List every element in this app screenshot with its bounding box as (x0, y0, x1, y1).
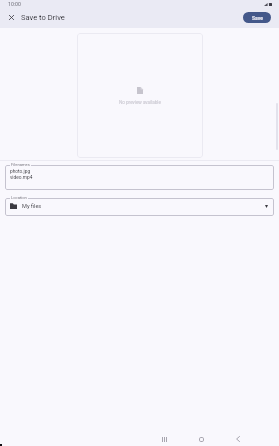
button[interactable]: Home (188, 430, 214, 446)
staticText: Save to Drive (21, 13, 65, 22)
staticText: 10:00 (8, 1, 21, 7)
staticText: No preview available (119, 100, 161, 105)
button[interactable]: Close (5, 11, 18, 24)
staticText: Save (252, 15, 263, 21)
staticText: Location (11, 195, 27, 200)
button[interactable]: Recent apps (151, 430, 177, 446)
button[interactable]: Save (243, 12, 271, 23)
staticText: My files (22, 203, 42, 210)
button[interactable]: photo.jpg (5, 165, 274, 190)
button[interactable]: My files (5, 198, 274, 216)
staticText: Filenames (11, 162, 30, 167)
staticText: video.mp4 (10, 175, 33, 181)
staticText: photo.jpg (10, 169, 31, 175)
button[interactable]: Back (225, 430, 251, 446)
